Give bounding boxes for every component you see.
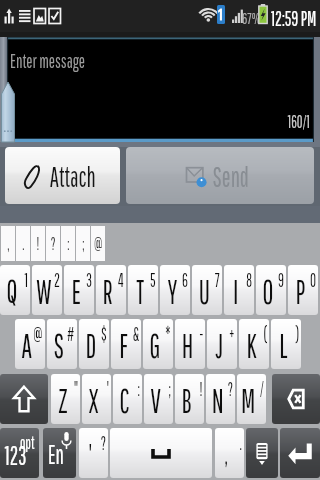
staticText: ( <box>263 323 267 345</box>
staticText: $ <box>101 323 107 345</box>
staticText: ; <box>82 234 85 254</box>
staticText: ? <box>51 234 56 254</box>
button[interactable]: ? <box>46 226 60 261</box>
staticText: 5 <box>150 269 156 291</box>
button[interactable]: Shift <box>0 374 48 424</box>
staticText: 8 <box>246 269 252 291</box>
staticText: P <box>295 272 305 311</box>
staticText: ' <box>89 439 92 469</box>
staticText: D <box>85 326 96 365</box>
button[interactable]: ! <box>31 226 45 261</box>
staticText: 160/1 <box>288 112 310 132</box>
staticText: opt <box>20 432 35 453</box>
staticText: : <box>137 378 140 400</box>
button[interactable]: V <box>144 374 173 424</box>
staticText: ? <box>101 432 106 454</box>
button[interactable]: Y <box>160 265 190 315</box>
button[interactable]: , <box>1 226 15 261</box>
button[interactable]: : <box>61 226 75 261</box>
button[interactable]: X <box>82 374 111 424</box>
button[interactable]: D <box>79 319 109 369</box>
button[interactable]: N <box>206 374 235 424</box>
staticText: # <box>67 323 75 345</box>
staticText: @ <box>33 323 43 345</box>
button[interactable]: 123 <box>0 428 39 478</box>
staticText: G <box>149 326 160 365</box>
staticText: 12:59 PM <box>271 6 317 30</box>
staticText: ; <box>168 378 171 400</box>
staticText: ) <box>295 323 299 345</box>
button[interactable]: Z <box>51 374 80 424</box>
staticText: . <box>239 432 242 454</box>
staticText: / <box>260 378 264 400</box>
staticText: I <box>233 272 239 311</box>
button[interactable]: Hide keyboard <box>246 428 278 478</box>
button[interactable]: K <box>239 319 269 369</box>
staticText: S <box>53 326 64 365</box>
staticText: 6 <box>182 269 188 291</box>
button[interactable]: Send <box>126 147 314 204</box>
staticText: 7 <box>215 269 220 291</box>
staticText: . <box>22 234 25 254</box>
staticText: 0 <box>310 269 316 291</box>
button[interactable]: Enter <box>280 428 320 478</box>
button[interactable]: Enter message <box>7 37 314 142</box>
button[interactable]: W <box>32 265 62 315</box>
staticText: & <box>133 323 139 345</box>
staticText: M <box>241 381 256 420</box>
button[interactable]: B <box>175 374 204 424</box>
button[interactable]: Attach <box>5 147 120 204</box>
staticText: U <box>199 272 210 311</box>
button[interactable]: C <box>113 374 142 424</box>
staticText: J <box>215 326 224 365</box>
staticText: 4 <box>118 269 124 291</box>
staticText: ? <box>228 378 233 400</box>
button[interactable]: Backspace <box>272 374 320 424</box>
staticText: C <box>119 381 129 420</box>
button[interactable]: T <box>128 265 158 315</box>
staticText: 3 <box>86 269 92 291</box>
button[interactable]: I <box>224 265 254 315</box>
button[interactable]: G <box>143 319 173 369</box>
button[interactable]: H <box>175 319 205 369</box>
button[interactable]: ' <box>79 428 108 478</box>
button[interactable]: Space <box>110 428 212 478</box>
staticText: A <box>21 326 32 365</box>
staticText: 2 <box>54 269 60 291</box>
button[interactable]: P <box>288 265 318 315</box>
staticText: ' <box>106 378 109 400</box>
staticText: K <box>246 326 256 365</box>
staticText: L <box>279 326 288 365</box>
button[interactable]: @ <box>91 226 105 261</box>
staticText: F <box>119 326 128 365</box>
staticText: + <box>229 323 235 345</box>
button[interactable]: R <box>96 265 126 315</box>
button[interactable]: En <box>43 428 76 478</box>
staticText: Q <box>6 272 17 311</box>
staticText: 67% <box>242 9 261 27</box>
button[interactable]: U <box>192 265 222 315</box>
button[interactable]: E <box>64 265 94 315</box>
button[interactable]: ; <box>76 226 90 261</box>
button[interactable]: L <box>271 319 301 369</box>
staticText: B <box>181 381 191 420</box>
button[interactable]: S <box>47 319 77 369</box>
button[interactable]: Q <box>0 265 30 315</box>
staticText: @ <box>94 234 103 254</box>
button[interactable]: J <box>207 319 237 369</box>
button[interactable]: , <box>215 428 244 478</box>
staticText: En <box>48 439 64 469</box>
staticText: , <box>7 234 10 254</box>
button[interactable]: O <box>256 265 286 315</box>
staticText: W <box>36 272 52 311</box>
staticText: 123 <box>5 440 27 470</box>
button[interactable]: M <box>237 374 266 424</box>
button[interactable]: F <box>111 319 141 369</box>
staticText: X <box>88 381 98 420</box>
button[interactable]: . <box>16 226 30 261</box>
staticText: Send <box>213 159 249 192</box>
staticText: Y <box>167 272 177 311</box>
button[interactable]: A <box>15 319 45 369</box>
staticText: , <box>225 439 228 469</box>
staticText: ! <box>199 378 202 400</box>
